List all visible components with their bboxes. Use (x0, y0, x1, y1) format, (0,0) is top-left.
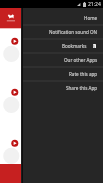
staticText: Our other Apps (64, 57, 98, 63)
staticText: 21:24 (88, 1, 101, 8)
staticText: Notification sound ON (49, 29, 98, 35)
staticText: Share this App (66, 85, 98, 91)
staticText: Home (84, 15, 98, 21)
staticText: Rate this app (69, 71, 98, 77)
staticText: Bookmarks (62, 43, 87, 49)
button[interactable]: Our other Apps (23, 53, 103, 67)
staticText: 5 (93, 44, 96, 48)
button[interactable]: Share this App (23, 81, 103, 95)
button[interactable]: Home (23, 11, 103, 25)
button[interactable]: Rate this app (23, 67, 103, 81)
button[interactable]: Bookmarks (23, 39, 103, 53)
button[interactable]: Notification sound ON (23, 25, 103, 39)
